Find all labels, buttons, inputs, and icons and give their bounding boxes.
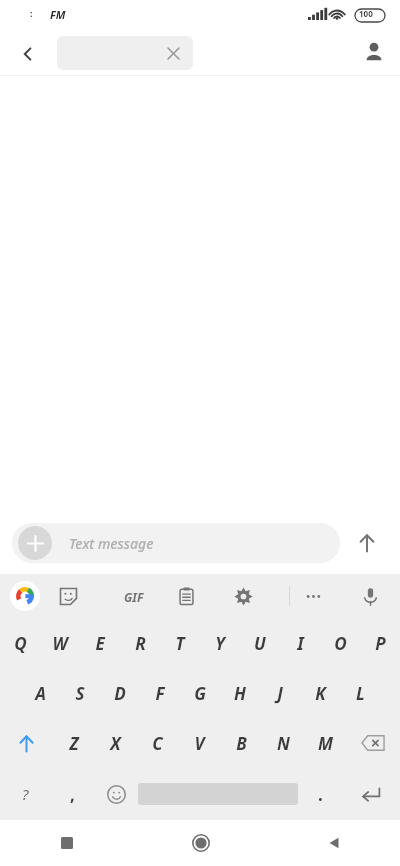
button[interactable]: X — [94, 718, 136, 768]
button[interactable]: Enter — [342, 768, 400, 820]
button[interactable]: Emoji — [94, 768, 138, 820]
staticText: H — [234, 682, 246, 705]
staticText: ? — [22, 784, 29, 804]
button[interactable]: B — [220, 718, 262, 768]
staticText: GIF — [124, 589, 144, 605]
button[interactable]: Shift — [0, 718, 53, 768]
staticText: : — [30, 7, 33, 19]
button[interactable]: Clear — [163, 43, 183, 63]
staticText: Z — [69, 732, 79, 755]
button[interactable]: Recents — [0, 820, 134, 866]
button[interactable]: Home — [134, 820, 267, 866]
staticText: , — [70, 783, 75, 806]
button[interactable]: R — [120, 618, 160, 668]
staticText: E — [95, 632, 105, 655]
staticText: B — [236, 732, 247, 755]
staticText: Text message — [69, 534, 154, 553]
staticText: P — [375, 632, 386, 655]
button[interactable]: U — [240, 618, 280, 668]
staticText: O — [334, 632, 347, 655]
button[interactable]: GIF — [112, 580, 144, 612]
button[interactable]: J — [260, 668, 300, 718]
button[interactable]: Voice input — [354, 580, 386, 612]
button[interactable]: Clipboard — [170, 580, 202, 612]
button[interactable]: Settings — [227, 580, 259, 612]
button[interactable]: Symbols — [0, 768, 50, 820]
button[interactable]: Stickers — [52, 580, 84, 612]
button[interactable]: H — [220, 668, 260, 718]
staticText: J — [277, 682, 283, 705]
staticText: T — [175, 632, 185, 655]
button[interactable]: Back — [12, 38, 44, 70]
staticText: . — [318, 783, 323, 806]
button[interactable]: . — [298, 768, 342, 820]
button[interactable]: A — [20, 668, 60, 718]
staticText: G — [194, 682, 206, 705]
button[interactable]: I — [280, 618, 320, 668]
button[interactable]: Attach — [18, 526, 52, 560]
staticText: L — [356, 682, 365, 705]
staticText: Y — [215, 632, 225, 655]
staticText: Q — [14, 632, 27, 655]
button[interactable]: W — [40, 618, 80, 668]
button[interactable]: F — [140, 668, 180, 718]
button[interactable]: O — [320, 618, 360, 668]
button[interactable]: T — [160, 618, 200, 668]
staticText: N — [277, 732, 290, 755]
button[interactable]: Q — [0, 618, 40, 668]
button[interactable]: L — [340, 668, 380, 718]
staticText: V — [194, 732, 205, 755]
button[interactable]: More options — [297, 580, 329, 612]
staticText: R — [135, 632, 146, 655]
button[interactable]: Backspace — [346, 718, 400, 768]
button[interactable]: Z — [53, 718, 94, 768]
button[interactable]: Contact details — [356, 34, 392, 70]
staticText: K — [315, 682, 326, 705]
button[interactable]: Y — [200, 618, 240, 668]
button[interactable]: Clear — [57, 36, 193, 70]
button[interactable]: K — [300, 668, 340, 718]
button[interactable]: P — [360, 618, 400, 668]
button[interactable]: M — [304, 718, 346, 768]
button[interactable]: , — [50, 768, 94, 820]
staticText: D — [114, 682, 126, 705]
staticText: S — [75, 682, 85, 705]
button[interactable]: Send — [349, 525, 385, 561]
button[interactable]: V — [178, 718, 220, 768]
button[interactable]: C — [136, 718, 178, 768]
staticText: W — [52, 632, 68, 655]
staticText: F — [155, 682, 165, 705]
button[interactable]: Back — [267, 820, 400, 866]
button[interactable]: E — [80, 618, 120, 668]
staticText: X — [110, 732, 121, 755]
button[interactable]: Google search — [10, 581, 40, 611]
button[interactable]: G — [180, 668, 220, 718]
button[interactable]: S — [60, 668, 100, 718]
staticText: I — [297, 632, 304, 655]
staticText: A — [35, 682, 46, 705]
button[interactable]: Attach — [12, 523, 340, 563]
staticText: C — [152, 732, 163, 755]
button[interactable]: D — [100, 668, 140, 718]
staticText: M — [318, 732, 333, 755]
staticText: 100 — [359, 8, 373, 19]
staticText: U — [254, 632, 266, 655]
button[interactable]: N — [262, 718, 304, 768]
button[interactable]: Space — [138, 768, 298, 820]
staticText: FM — [50, 7, 66, 22]
